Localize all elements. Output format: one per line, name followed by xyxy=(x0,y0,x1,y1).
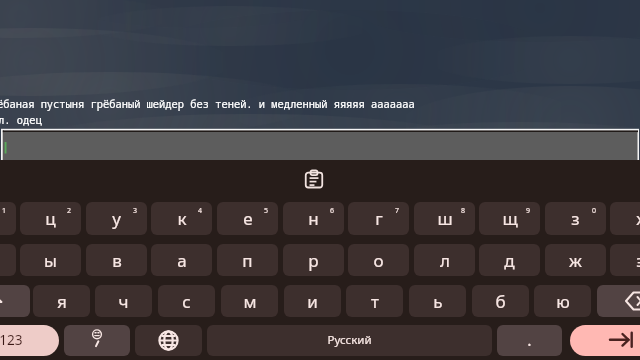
staticText: я xyxy=(57,290,67,313)
staticText: п xyxy=(242,249,253,272)
button[interactable]: б xyxy=(472,285,529,317)
button[interactable]: Change language xyxy=(135,325,202,356)
button[interactable]: Emoji xyxy=(64,325,130,356)
staticText: ю xyxy=(556,290,570,313)
staticText: 0 xyxy=(592,206,597,216)
staticText: щ xyxy=(502,207,518,230)
button[interactable]: с xyxy=(158,285,215,317)
button[interactable]: й xyxy=(0,202,16,235)
staticText: 3 xyxy=(133,206,138,216)
staticText: с xyxy=(182,290,191,313)
button[interactable]: л xyxy=(414,244,475,276)
staticText: в xyxy=(112,249,122,272)
button[interactable]: ч xyxy=(95,285,152,317)
staticText: л. одец xyxy=(0,113,42,127)
button[interactable]: ф xyxy=(0,244,16,276)
staticText: г xyxy=(375,207,383,230)
button[interactable]: Русский xyxy=(207,325,492,356)
staticText: 5 xyxy=(264,206,269,216)
staticText: ж xyxy=(569,249,582,272)
button[interactable]: о xyxy=(348,244,409,276)
staticText: 7 xyxy=(395,206,400,216)
staticText: ш xyxy=(437,207,453,230)
staticText: ?123 xyxy=(0,330,23,349)
staticText: 6 xyxy=(330,206,335,216)
staticText: ёбаная пустыня грёбаный шейдер без теней… xyxy=(0,97,415,111)
button[interactable]: Enter xyxy=(570,325,640,356)
button[interactable]: а xyxy=(151,244,212,276)
staticText: Русский xyxy=(327,332,372,348)
staticText: ц xyxy=(45,207,56,230)
button[interactable]: з xyxy=(545,202,606,235)
staticText: з xyxy=(571,207,580,230)
staticText: 8 xyxy=(461,206,466,216)
button[interactable]: е xyxy=(217,202,278,235)
button[interactable]: м xyxy=(221,285,278,317)
staticText: ь xyxy=(433,290,443,313)
staticText: ы xyxy=(44,249,57,272)
staticText: у xyxy=(112,207,121,230)
staticText: и xyxy=(307,290,318,313)
button[interactable]: р xyxy=(283,244,344,276)
staticText: о xyxy=(373,249,384,272)
button[interactable]: ж xyxy=(545,244,606,276)
staticText: 9 xyxy=(526,206,531,216)
staticText: э xyxy=(636,249,640,272)
staticText: р xyxy=(308,249,319,272)
button[interactable]: ы xyxy=(20,244,81,276)
staticText: 2 xyxy=(67,206,72,216)
button[interactable]: . xyxy=(497,325,562,356)
button[interactable]: п xyxy=(217,244,278,276)
button[interactable]: ц xyxy=(20,202,81,235)
button[interactable]: э xyxy=(610,244,640,276)
button[interactable]: к xyxy=(151,202,212,235)
button[interactable]: Backspace xyxy=(597,285,640,317)
button[interactable]: т xyxy=(346,285,403,317)
staticText: т xyxy=(371,290,379,313)
button[interactable]: в xyxy=(86,244,147,276)
button[interactable]: г xyxy=(348,202,409,235)
button[interactable]: д xyxy=(479,244,540,276)
button[interactable]: я xyxy=(33,285,90,317)
button[interactable]: ш xyxy=(414,202,475,235)
button[interactable]: Shift xyxy=(0,285,30,317)
staticText: б xyxy=(495,290,506,313)
staticText: 4 xyxy=(198,206,203,216)
button[interactable]: и xyxy=(284,285,341,317)
staticText: а xyxy=(177,249,187,272)
staticText: е xyxy=(243,207,253,230)
staticText: 1 xyxy=(2,206,7,216)
button[interactable]: у xyxy=(86,202,147,235)
button[interactable]: н xyxy=(283,202,344,235)
staticText: д xyxy=(504,249,515,272)
staticText: к xyxy=(177,207,187,230)
staticText: м xyxy=(243,290,257,313)
button[interactable]: Clipboard xyxy=(298,163,330,195)
staticText: х xyxy=(636,207,640,230)
staticText: . xyxy=(527,329,532,351)
button[interactable]: ?123 xyxy=(0,325,59,356)
button[interactable]: х xyxy=(610,202,640,235)
button[interactable]: ь xyxy=(409,285,466,317)
staticText: н xyxy=(308,207,319,230)
staticText: ч xyxy=(118,290,129,313)
button[interactable]: ю xyxy=(534,285,591,317)
button[interactable]: щ xyxy=(479,202,540,235)
staticText: л xyxy=(440,249,450,272)
